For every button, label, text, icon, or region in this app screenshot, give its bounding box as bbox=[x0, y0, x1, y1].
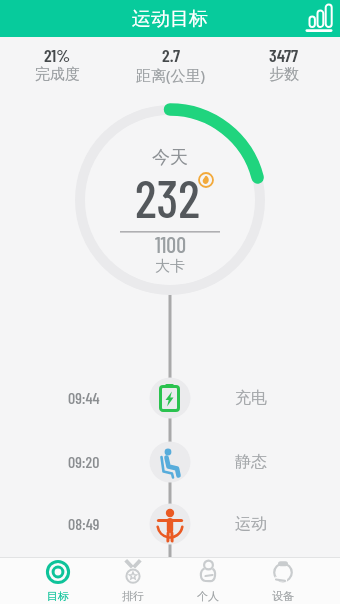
staticText: 1100 bbox=[155, 231, 186, 257]
staticText: 232 bbox=[135, 166, 200, 228]
button[interactable] bbox=[303, 0, 340, 37]
button[interactable]: 充电 bbox=[235, 388, 267, 408]
staticText: 步数 bbox=[269, 65, 299, 84]
staticText: 今天 bbox=[152, 146, 188, 169]
staticText: 设备 bbox=[272, 589, 294, 603]
staticText: 21% bbox=[44, 44, 71, 66]
button[interactable]: 排行 bbox=[95, 558, 170, 604]
staticText: 排行 bbox=[122, 589, 144, 603]
button[interactable]: 09:44 bbox=[0, 388, 100, 407]
staticText: 09:44 bbox=[68, 388, 100, 407]
button[interactable]: 个人 bbox=[170, 558, 245, 604]
staticText: 运动目标 bbox=[132, 7, 208, 31]
button[interactable]: 3477 bbox=[227, 44, 340, 66]
staticText: 大卡 bbox=[155, 257, 185, 276]
button[interactable]: 09:20 bbox=[0, 452, 100, 471]
staticText: 08:49 bbox=[68, 514, 100, 533]
staticText: 09:20 bbox=[68, 452, 100, 471]
staticText: 2.7 bbox=[162, 44, 180, 66]
button[interactable]: 2.7 bbox=[114, 44, 227, 66]
button[interactable]: 设备 bbox=[245, 558, 320, 604]
button[interactable]: 08:49 bbox=[0, 514, 100, 533]
button[interactable]: 目标 bbox=[20, 558, 95, 604]
staticText: 目标 bbox=[47, 589, 69, 603]
staticText: 个人 bbox=[197, 589, 219, 603]
staticText: 距离(公里) bbox=[136, 65, 206, 85]
staticText: 完成度 bbox=[35, 65, 80, 84]
button[interactable]: 21% bbox=[0, 44, 114, 66]
staticText: 3477 bbox=[269, 44, 299, 66]
button[interactable]: 运动 bbox=[235, 514, 267, 534]
button[interactable]: 静态 bbox=[235, 452, 267, 472]
